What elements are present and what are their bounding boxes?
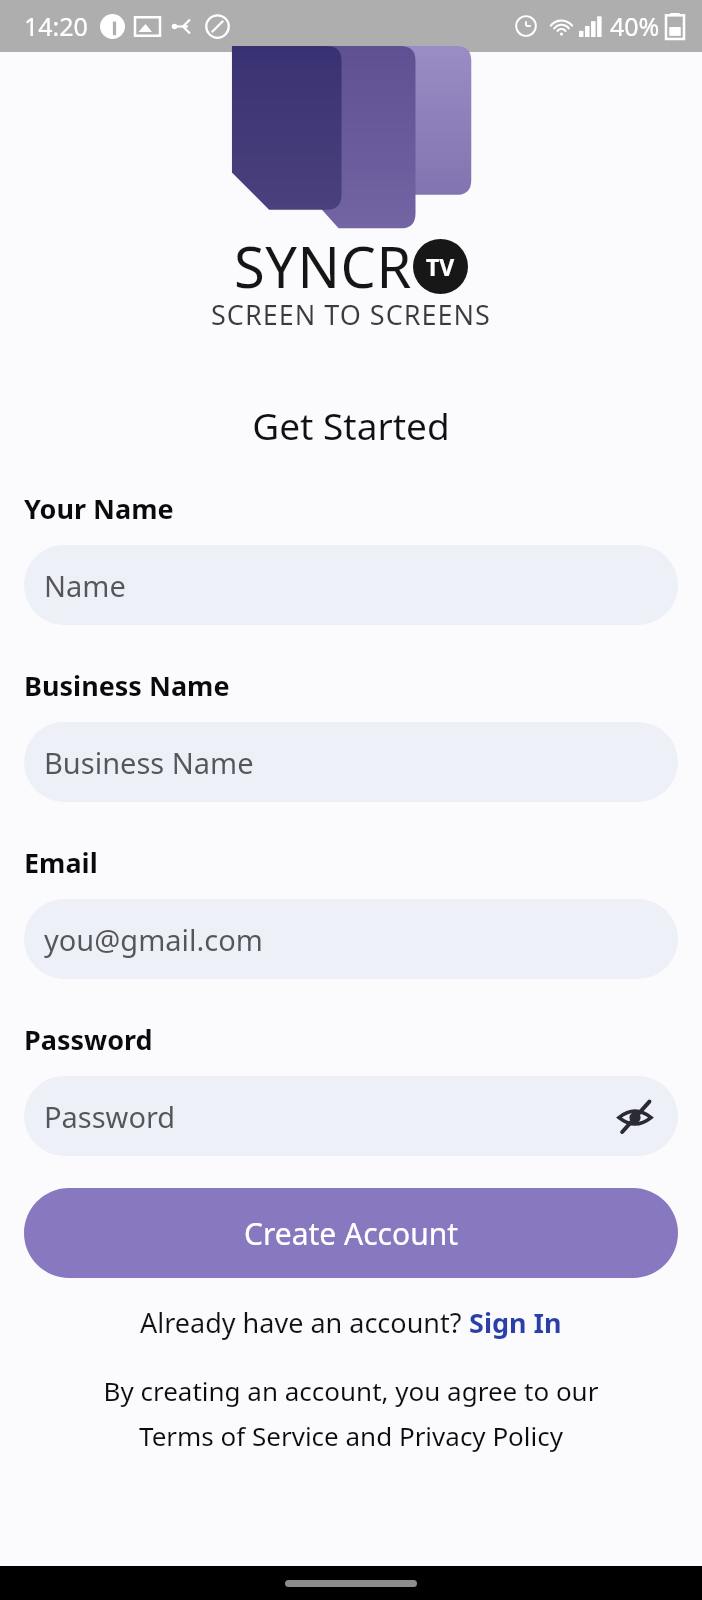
- button[interactable]: you@gmail.com: [24, 899, 678, 979]
- button[interactable]: Show password: [610, 1091, 660, 1141]
- staticText: Get Started: [0, 400, 702, 450]
- staticText: Password: [24, 1021, 153, 1058]
- staticText: By creating an account, you agree to our: [0, 1373, 702, 1408]
- staticText: 14:20: [24, 9, 88, 43]
- staticText: SYNCR: [234, 228, 412, 304]
- button[interactable]: Name: [24, 545, 678, 625]
- staticText: Email: [24, 844, 98, 881]
- staticText: 40%: [610, 9, 660, 43]
- staticText: Create Account: [244, 1213, 459, 1254]
- staticText: SCREEN TO SCREENS: [211, 296, 491, 333]
- staticText: Already have an account?: [140, 1304, 469, 1341]
- staticText: you@gmail.com: [44, 920, 263, 959]
- staticText: Business Name: [44, 743, 254, 782]
- button[interactable]: Create Account: [24, 1188, 678, 1278]
- staticText: Business Name: [24, 667, 230, 704]
- button[interactable]: Sign In: [469, 1304, 562, 1341]
- staticText: TV: [426, 251, 455, 282]
- button[interactable]: Business Name: [24, 722, 678, 802]
- staticText: Your Name: [24, 490, 174, 527]
- button[interactable]: Terms of Service and Privacy Policy: [0, 1418, 702, 1453]
- button[interactable]: Password: [24, 1076, 678, 1156]
- staticText: Name: [44, 566, 126, 605]
- staticText: Password: [44, 1097, 176, 1136]
- staticText: Sign In: [469, 1304, 562, 1341]
